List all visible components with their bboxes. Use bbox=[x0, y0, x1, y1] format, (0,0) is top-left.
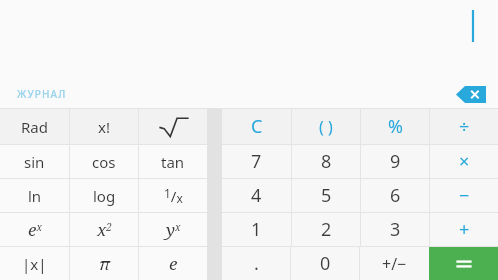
staticText: % bbox=[388, 114, 403, 139]
button[interactable]: ex bbox=[0, 213, 69, 246]
button[interactable]: 4 bbox=[222, 179, 291, 212]
button[interactable]: sin bbox=[0, 145, 69, 178]
staticText: . bbox=[254, 251, 259, 276]
button[interactable]: 1 bbox=[222, 213, 291, 246]
staticText: ex bbox=[28, 218, 42, 241]
button[interactable]: 1/x bbox=[139, 179, 207, 212]
staticText: π bbox=[99, 252, 110, 275]
staticText: log bbox=[93, 186, 116, 206]
button[interactable]: Rad bbox=[0, 109, 69, 144]
button[interactable]: % bbox=[361, 109, 429, 144]
button[interactable]: π bbox=[70, 247, 138, 280]
staticText: Rad bbox=[21, 117, 48, 137]
button[interactable]: ln bbox=[0, 179, 69, 212]
staticText: yx bbox=[166, 218, 181, 241]
staticText: 1/x bbox=[164, 185, 183, 207]
staticText: 9 bbox=[390, 149, 401, 174]
staticText: tan bbox=[161, 152, 185, 172]
staticText: +/− bbox=[382, 253, 407, 275]
button[interactable]: ÷ bbox=[430, 109, 498, 144]
staticText: ÷ bbox=[459, 114, 470, 139]
staticText: cos bbox=[92, 152, 116, 172]
button[interactable]: ( ) bbox=[292, 109, 360, 144]
button[interactable]: tan bbox=[139, 145, 207, 178]
staticText: C bbox=[251, 114, 263, 139]
staticText: 2 bbox=[321, 217, 332, 242]
button[interactable]: 8 bbox=[292, 145, 360, 178]
button[interactable]: +/− bbox=[360, 247, 429, 280]
button[interactable]: |x| bbox=[0, 247, 69, 280]
button[interactable]: C bbox=[222, 109, 291, 144]
button[interactable]: + bbox=[430, 213, 498, 246]
staticText: 1 bbox=[251, 217, 262, 242]
button[interactable]: e bbox=[139, 247, 207, 280]
button[interactable]: 9 bbox=[361, 145, 429, 178]
button[interactable]: 0 bbox=[291, 247, 359, 280]
button[interactable]: 5 bbox=[292, 179, 360, 212]
staticText: sin bbox=[24, 152, 45, 172]
staticText: 5 bbox=[321, 183, 332, 208]
button[interactable]: Equals bbox=[429, 247, 498, 280]
staticText: ( ) bbox=[319, 116, 333, 138]
button[interactable]: x2 bbox=[70, 213, 138, 246]
button[interactable]: 2 bbox=[292, 213, 360, 246]
staticText: e bbox=[169, 252, 178, 275]
staticText: + bbox=[459, 217, 470, 242]
staticText: |x| bbox=[22, 254, 47, 274]
staticText: ln bbox=[28, 186, 42, 206]
button[interactable]: × bbox=[430, 145, 498, 178]
button[interactable]: cos bbox=[70, 145, 138, 178]
staticText: 3 bbox=[390, 217, 401, 242]
staticText: 4 bbox=[251, 183, 262, 208]
staticText: 8 bbox=[321, 149, 332, 174]
staticText: 7 bbox=[251, 149, 262, 174]
button[interactable]: − bbox=[430, 179, 498, 212]
button[interactable]: 7 bbox=[222, 145, 291, 178]
staticText: 0 bbox=[320, 251, 331, 276]
button[interactable]: x! bbox=[70, 109, 138, 144]
button[interactable]: 6 bbox=[361, 179, 429, 212]
staticText: x2 bbox=[97, 218, 112, 241]
staticText: x! bbox=[98, 117, 110, 137]
button[interactable]: log bbox=[70, 179, 138, 212]
staticText: × bbox=[459, 149, 470, 174]
button[interactable]: yx bbox=[139, 213, 207, 246]
button[interactable] bbox=[139, 109, 207, 144]
staticText: − bbox=[459, 183, 470, 208]
staticText: 6 bbox=[390, 183, 401, 208]
button[interactable]: Backspace bbox=[456, 86, 486, 103]
button[interactable]: . bbox=[222, 247, 290, 280]
button[interactable]: 3 bbox=[361, 213, 429, 246]
button[interactable]: ЖУРНАЛ bbox=[17, 87, 67, 101]
